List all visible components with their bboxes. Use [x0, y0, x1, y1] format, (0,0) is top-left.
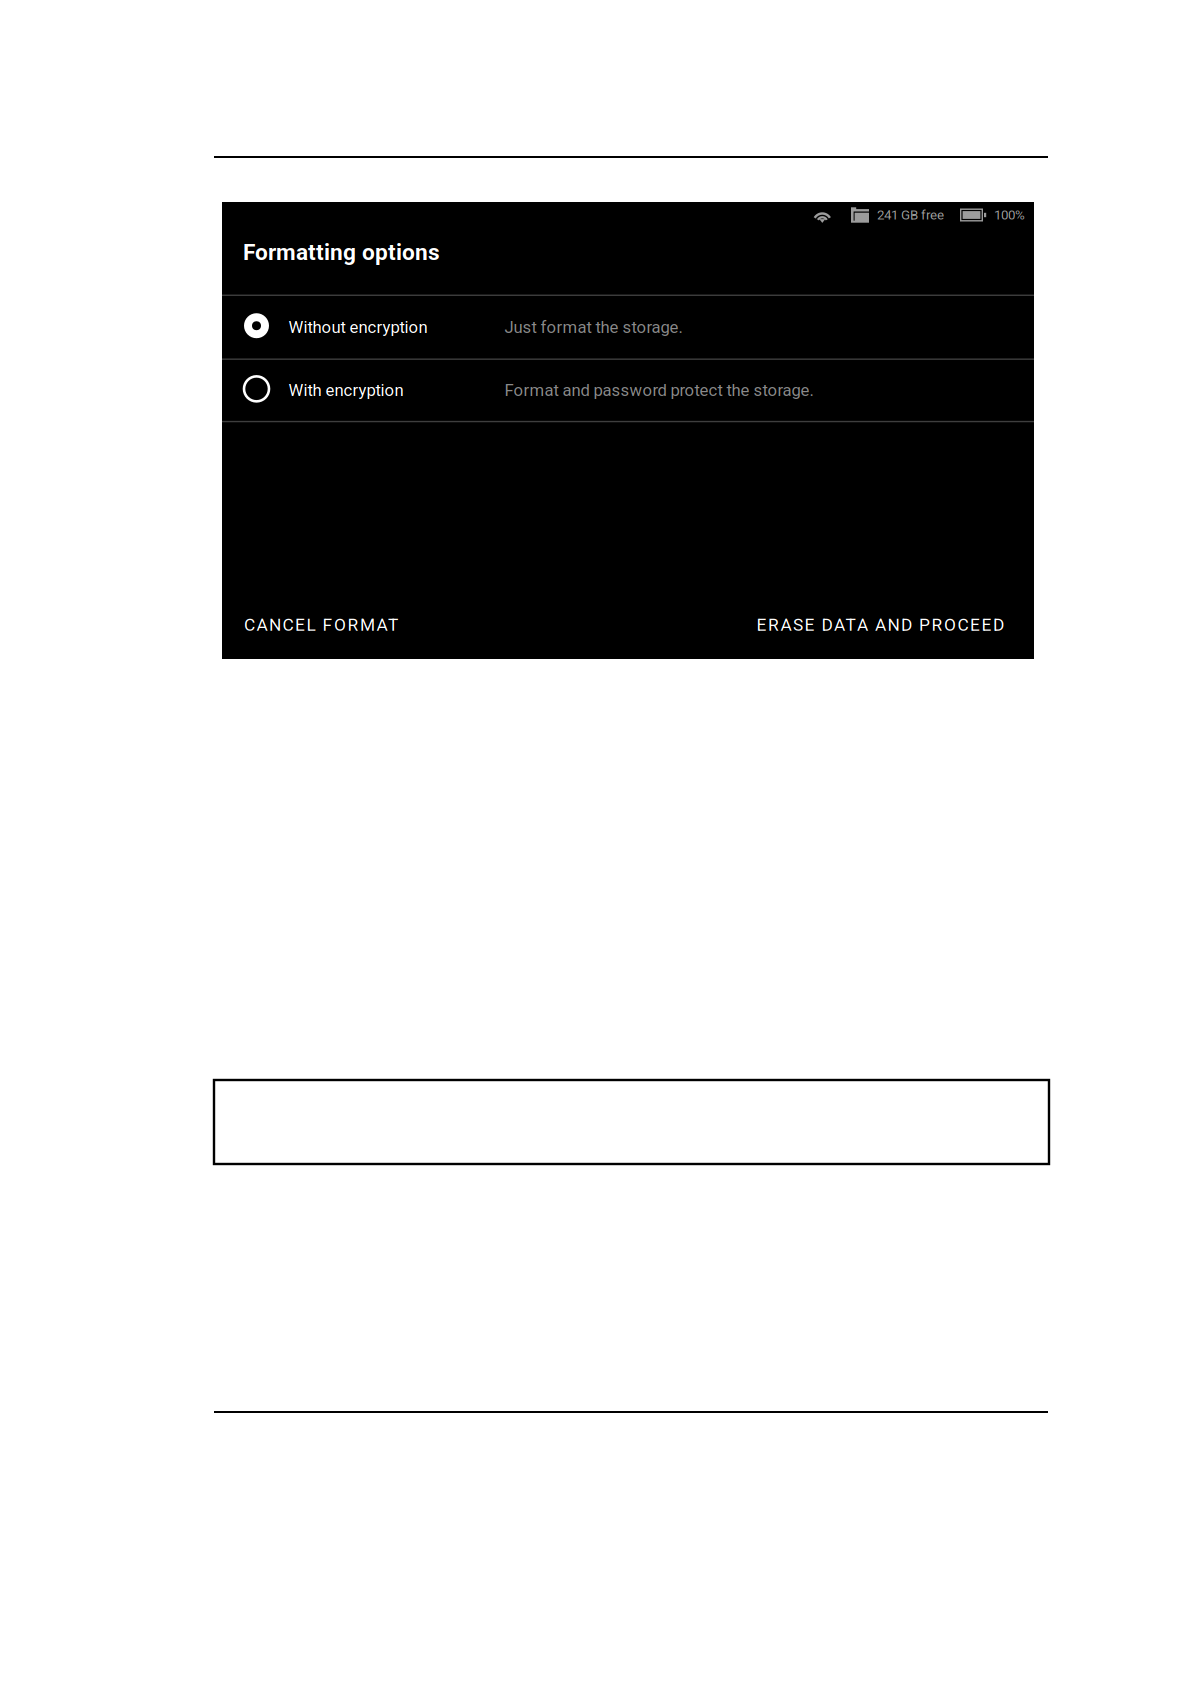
staticText: Just format the storage.: [504, 317, 682, 337]
staticText: Without encryption: [288, 317, 427, 337]
button[interactable]: CANCEL FORMAT: [244, 603, 402, 647]
staticText: 241 GB free: [877, 207, 944, 223]
button[interactable]: ERASE DATA AND PROCEED: [752, 603, 1004, 647]
staticText: Format and password protect the storage.: [504, 381, 813, 400]
staticText: ERASE DATA AND PROCEED: [756, 615, 1004, 635]
staticText: Formatting options: [243, 239, 440, 266]
button[interactable]: With encryption: [222, 360, 1034, 421]
staticText: With encryption: [288, 381, 403, 400]
staticText: 100%: [994, 207, 1025, 223]
button[interactable]: Without encryption: [222, 296, 1034, 358]
staticText: CANCEL FORMAT: [244, 615, 398, 635]
